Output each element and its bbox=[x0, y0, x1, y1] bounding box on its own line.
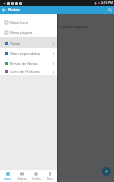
button[interactable]: Todas bbox=[0, 38, 57, 48]
button[interactable]: Add note bbox=[102, 167, 111, 176]
staticText: Brisas de Notas bbox=[10, 61, 38, 66]
button[interactable]: Mais bbox=[43, 170, 57, 182]
button[interactable]: More options bbox=[50, 50, 56, 56]
staticText: Todas bbox=[10, 41, 21, 46]
button[interactable]: Back bbox=[0, 6, 8, 14]
button[interactable]: Search bbox=[106, 6, 114, 14]
button[interactable]: Nova página bbox=[0, 27, 57, 37]
staticText: Páginas bbox=[17, 177, 27, 181]
button[interactable]: More options bbox=[50, 60, 56, 66]
button[interactable]: Livro de Pinturas bbox=[0, 68, 57, 75]
button[interactable]: More options bbox=[50, 69, 56, 75]
staticText: Livro de Pinturas bbox=[10, 69, 40, 74]
staticText: Notas bbox=[8, 7, 20, 13]
button[interactable]: Novo livro bbox=[0, 17, 57, 27]
staticText: Não respondidas bbox=[10, 51, 41, 56]
staticText: 2:13 PM bbox=[101, 1, 113, 5]
staticText: Novo livro bbox=[10, 20, 28, 25]
button[interactable]: Brisas de Notas bbox=[0, 58, 57, 68]
staticText: Nova página bbox=[10, 30, 33, 35]
button[interactable]: Não respondidas bbox=[0, 48, 57, 58]
button[interactable]: Páginas bbox=[15, 170, 29, 182]
staticText: livro e pelas páginas bbox=[50, 24, 89, 29]
button[interactable]: More options bbox=[50, 40, 56, 46]
staticText: Livros bbox=[4, 177, 12, 181]
button[interactable]: Livros bbox=[0, 170, 15, 182]
staticText: Mais bbox=[47, 177, 53, 181]
button[interactable]: Tarefas bbox=[29, 170, 43, 182]
staticText: Tarefas bbox=[32, 177, 41, 181]
